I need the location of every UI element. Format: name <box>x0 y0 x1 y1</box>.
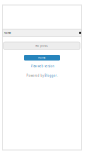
staticText: Home <box>38 56 46 59</box>
staticText: Blogger <box>44 74 56 77</box>
staticText: No posts. <box>35 44 48 47</box>
staticText: . <box>57 74 58 77</box>
button[interactable]: Blogger <box>44 74 56 77</box>
staticText: Home <box>3 31 11 35</box>
button[interactable]: Home <box>24 55 60 60</box>
button[interactable]: View web version <box>30 64 54 68</box>
staticText: View web version <box>30 64 54 68</box>
staticText: Powered by <box>27 74 44 77</box>
button[interactable]: Home <box>2 29 81 37</box>
